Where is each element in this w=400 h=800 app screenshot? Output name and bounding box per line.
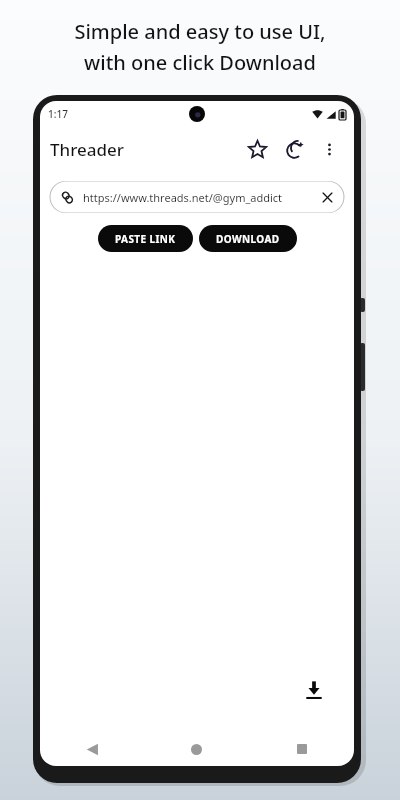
button[interactable]: https://www.threads.net/@gym_addict — [49, 181, 345, 213]
button[interactable]: PASTE LINK — [98, 225, 193, 252]
button[interactable]: Recent apps — [249, 732, 354, 766]
staticText: DOWNLOAD — [216, 232, 280, 246]
button[interactable]: Home — [144, 732, 249, 766]
staticText: PASTE LINK — [115, 232, 176, 246]
staticText: 1:17 — [48, 107, 68, 121]
button[interactable]: Toggle dark mode — [280, 134, 310, 164]
button[interactable]: Back — [40, 732, 144, 766]
staticText: https://www.threads.net/@gym_addict — [83, 190, 314, 205]
staticText: Threader — [50, 138, 125, 161]
button[interactable]: Clear — [319, 189, 335, 205]
button[interactable]: Download — [290, 666, 338, 714]
button[interactable]: Favorites — [242, 134, 272, 164]
button[interactable]: DOWNLOAD — [199, 225, 297, 252]
staticText: Simple and easy to use UI, — [74, 18, 326, 45]
button[interactable]: More options — [314, 134, 344, 164]
staticText: with one click Download — [84, 49, 316, 76]
